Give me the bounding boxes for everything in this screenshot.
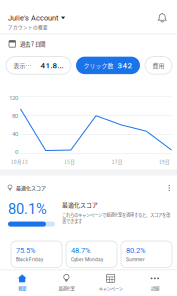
button[interactable]: 概要 — [0, 270, 44, 295]
button[interactable]: Notifications — [157, 1, 177, 34]
staticText: 120 — [9, 94, 18, 102]
button[interactable]: キャンペーン — [88, 270, 133, 295]
button[interactable]: More options — [161, 180, 177, 195]
staticText: 最適化スコア — [62, 200, 98, 209]
staticText: 19日 — [159, 158, 170, 165]
staticText: 10月13 — [11, 158, 28, 165]
staticText: 75.5% — [16, 246, 35, 255]
staticText: これらのキャンペーンで最適化案を適用すると、スコアを改善できます — [62, 211, 170, 224]
staticText: 48.7% — [71, 246, 90, 255]
button[interactable]: 費用 — [145, 57, 172, 74]
staticText: 0 — [15, 148, 18, 155]
button[interactable]: クリック数 — [76, 57, 140, 74]
staticText: 40 — [12, 130, 18, 137]
staticText: 80.2% — [126, 246, 145, 255]
staticText: 最適化スコア — [16, 184, 46, 191]
staticText: 80 — [12, 112, 18, 119]
staticText: Summer — [126, 257, 145, 262]
staticText: キャンペーン — [99, 285, 123, 292]
staticText: 最適化案 — [58, 285, 74, 292]
staticText: Julie's Account — [8, 14, 58, 22]
button[interactable]: 詳細 — [133, 270, 177, 295]
staticText: Black Friday — [16, 257, 43, 262]
button[interactable]: 表示回数 — [6, 57, 71, 74]
staticText: Cyber Monday — [71, 257, 103, 262]
staticText: 15日 — [64, 158, 75, 165]
staticText: 過去 7 日間 — [20, 40, 45, 48]
button[interactable]: 過去 7 日間 — [0, 34, 177, 53]
staticText: 詳細 — [151, 285, 159, 292]
staticText: 80.1% — [8, 200, 47, 218]
staticText: クリック数 — [83, 61, 113, 70]
staticText: 17日 — [112, 158, 123, 165]
button[interactable]: 48.7% — [66, 241, 117, 267]
staticText: 概要 — [18, 285, 26, 292]
staticText: 41.8万 — [40, 61, 63, 70]
staticText: 費用 — [152, 61, 164, 70]
button[interactable]: 最適化案 — [44, 270, 88, 295]
button[interactable]: Julie's Account — [0, 1, 65, 34]
staticText: 表示回数 — [13, 61, 36, 70]
staticText: アカウントの概要 — [8, 24, 48, 30]
button[interactable]: 80.2% — [121, 241, 172, 267]
button[interactable]: 75.5% — [11, 241, 62, 267]
staticText: 342 — [117, 61, 132, 70]
